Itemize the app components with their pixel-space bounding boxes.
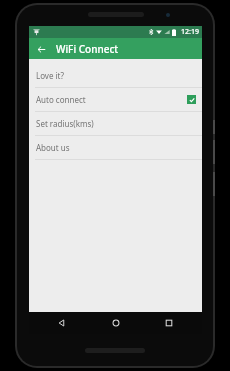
- button[interactable]: Home: [96, 312, 136, 334]
- button[interactable]: Love it?: [29, 64, 202, 87]
- button[interactable]: Back: [33, 41, 49, 57]
- staticText: Love it?: [36, 70, 64, 81]
- button[interactable]: About us: [29, 136, 202, 159]
- staticText: Set radius(kms): [36, 118, 94, 129]
- staticText: 12:19: [181, 27, 199, 37]
- staticText: Auto connect: [36, 94, 86, 105]
- button[interactable]: Recent apps: [149, 312, 189, 334]
- button[interactable]: Auto connect: [29, 88, 202, 111]
- staticText: WiFi Connect: [56, 42, 119, 56]
- button[interactable]: Back: [42, 312, 82, 334]
- staticText: About us: [36, 142, 70, 153]
- button[interactable]: Set radius(kms): [29, 112, 202, 135]
